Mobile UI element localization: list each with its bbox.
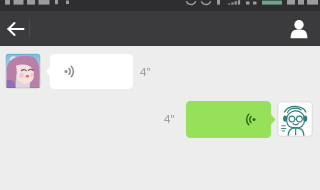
button[interactable]: Contact avatar: [6, 54, 40, 88]
button[interactable]: Play voice message, 4 seconds: [46, 54, 134, 89]
button[interactable]: Contact info: [284, 11, 318, 46]
button[interactable]: My avatar: [278, 102, 312, 136]
button[interactable]: Play voice message, 4 seconds: [186, 101, 276, 138]
button[interactable]: Back: [2, 11, 44, 46]
staticText: 4": [164, 111, 175, 126]
staticText: 4": [140, 64, 151, 79]
